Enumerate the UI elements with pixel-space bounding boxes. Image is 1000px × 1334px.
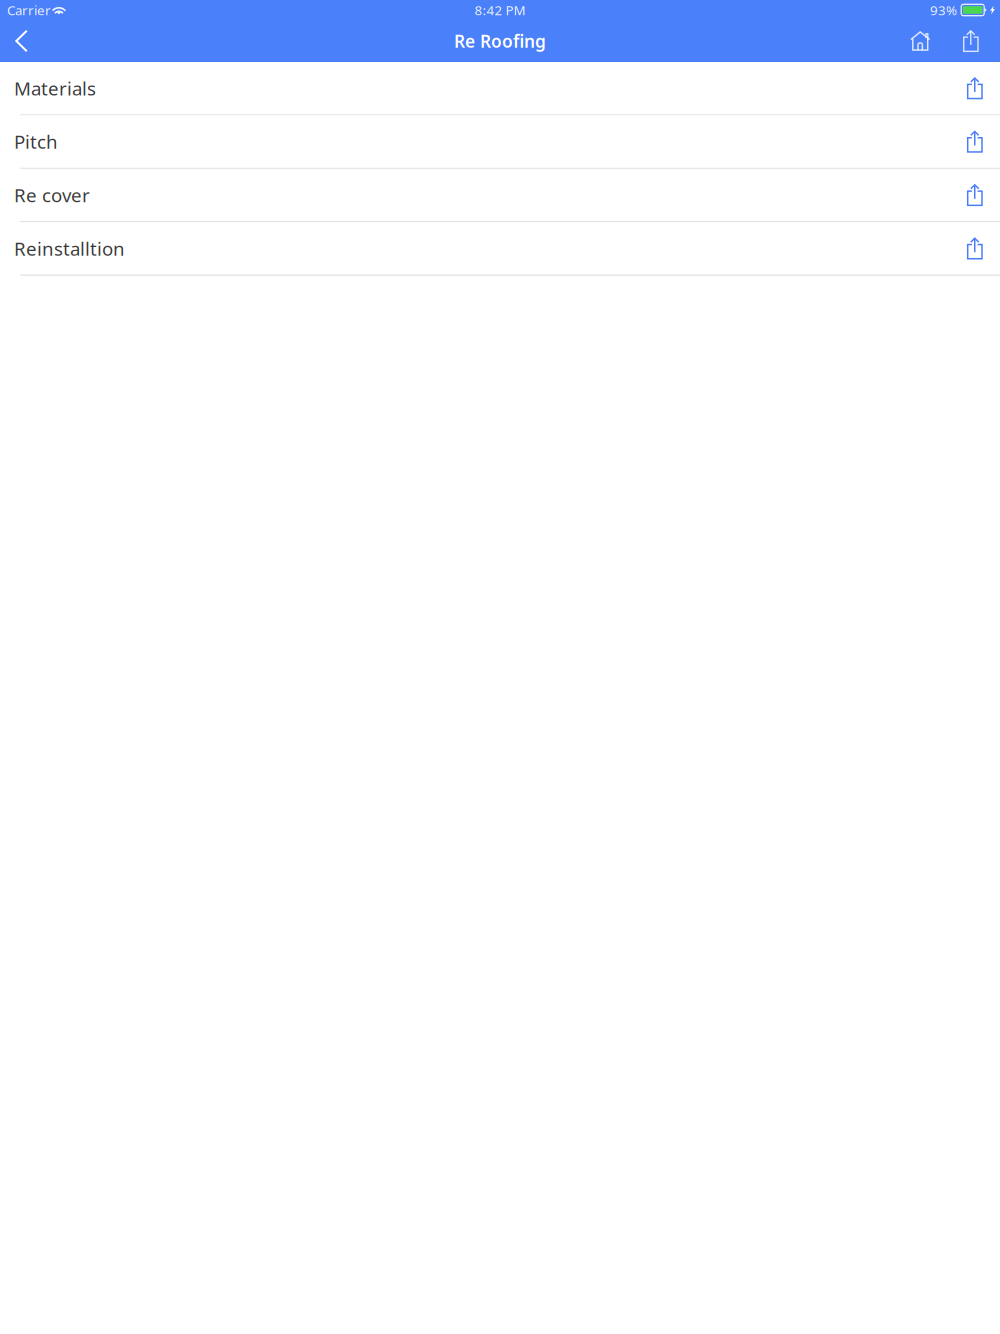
button[interactable]: Pitch (0, 115, 957, 168)
button[interactable]: Materials (0, 62, 957, 114)
staticText: 93% (930, 1, 957, 19)
button[interactable]: Share Re cover (957, 169, 1000, 221)
staticText: Reinstalltion (14, 236, 125, 261)
button[interactable]: Share Materials (957, 62, 1000, 114)
staticText: Materials (14, 76, 96, 101)
button[interactable]: Reinstalltion (0, 222, 957, 275)
staticText: Re Roofing (454, 29, 546, 52)
button[interactable]: Share Reinstalltion (957, 222, 1000, 275)
button[interactable]: Share Pitch (957, 115, 1000, 168)
staticText: Carrier (7, 1, 51, 19)
staticText: 8:42 PM (474, 1, 525, 19)
button[interactable]: Share (951, 20, 1000, 62)
button[interactable]: Home (898, 20, 951, 62)
button[interactable]: Back (0, 20, 43, 62)
button[interactable]: Re cover (0, 169, 957, 221)
staticText: Re cover (14, 183, 90, 207)
staticText: Pitch (14, 129, 58, 154)
